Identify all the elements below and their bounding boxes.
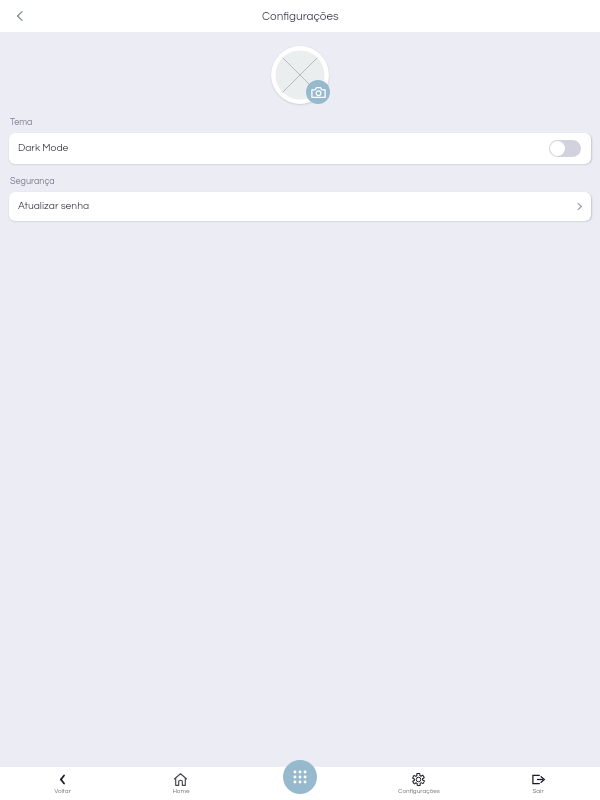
staticText: Home	[172, 788, 190, 795]
button[interactable]: Atualizar senha	[9, 192, 591, 221]
staticText: Configurações	[262, 10, 339, 22]
staticText: Tema	[10, 118, 33, 127]
button[interactable]	[549, 140, 581, 157]
button[interactable]: Configurações	[359, 767, 478, 800]
button[interactable]: Home	[121, 767, 240, 800]
button[interactable]: Alterar foto	[306, 80, 330, 104]
staticText: Segurança	[10, 177, 55, 186]
staticText: Configurações	[398, 788, 440, 795]
button[interactable]: Apps	[283, 760, 317, 794]
staticText: Voltar	[54, 788, 71, 795]
button[interactable]: Sair	[478, 767, 597, 800]
staticText: Sair	[532, 788, 544, 795]
button[interactable]: Voltar	[0, 0, 40, 32]
staticText: Atualizar senha	[18, 201, 90, 212]
button[interactable]: Voltar	[3, 767, 121, 800]
button[interactable]: Dark Mode	[9, 133, 591, 164]
staticText: Dark Mode	[18, 143, 69, 154]
